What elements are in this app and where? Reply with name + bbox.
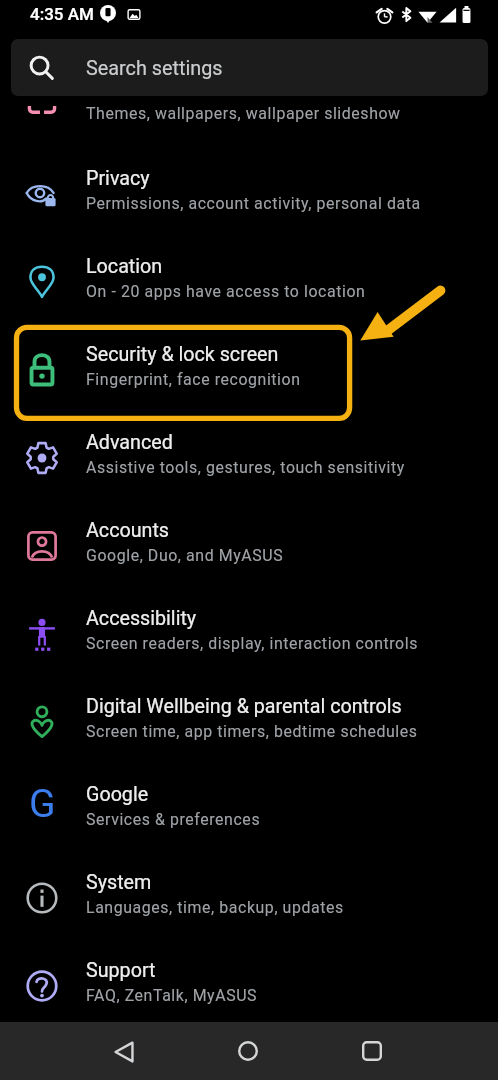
button[interactable] — [0, 145, 498, 233]
staticText: 4:35 AM — [30, 4, 94, 24]
staticText: Privacy — [86, 167, 150, 190]
staticText: Permissions, account activity, personal … — [86, 194, 421, 213]
staticText: Accessibility — [86, 607, 197, 630]
button[interactable] — [0, 233, 498, 321]
button[interactable]: Back — [93, 1022, 155, 1080]
button[interactable] — [0, 673, 498, 761]
staticText: Languages, time, backup, updates — [86, 898, 344, 917]
staticText: Themes, wallpapers, wallpaper slideshow — [86, 104, 401, 123]
button[interactable] — [0, 409, 498, 497]
button[interactable] — [0, 761, 498, 849]
button[interactable] — [0, 585, 498, 673]
staticText: FAQ, ZenTalk, MyASUS — [86, 986, 258, 1005]
staticText: Google — [86, 783, 149, 806]
staticText: Accounts — [86, 519, 170, 542]
button[interactable] — [0, 321, 498, 409]
button[interactable] — [0, 937, 498, 1025]
staticText: Services & preferences — [86, 810, 261, 829]
button[interactable]: Recents — [341, 1022, 403, 1080]
staticText: Assistive tools, gestures, touch sensiti… — [86, 458, 405, 477]
staticText: Screen time, app timers, bedtime schedul… — [86, 722, 418, 741]
staticText: Location — [86, 255, 163, 278]
button[interactable] — [0, 497, 498, 585]
button[interactable]: Home — [217, 1022, 279, 1080]
staticText: Search settings — [86, 57, 223, 80]
staticText: System — [86, 871, 152, 894]
staticText: Fingerprint, face recognition — [86, 370, 301, 389]
staticText: Advanced — [86, 431, 173, 454]
staticText: Google, Duo, and MyASUS — [86, 546, 284, 565]
staticText: Digital Wellbeing & parental controls — [86, 695, 402, 718]
staticText: Support — [86, 959, 156, 982]
button[interactable]: Search settings — [11, 39, 488, 96]
staticText: Security & lock screen — [86, 343, 279, 366]
staticText: On - 20 apps have access to location — [86, 282, 366, 301]
staticText: G — [29, 781, 56, 827]
button[interactable] — [0, 849, 498, 937]
staticText: Screen readers, display, interaction con… — [86, 634, 418, 653]
